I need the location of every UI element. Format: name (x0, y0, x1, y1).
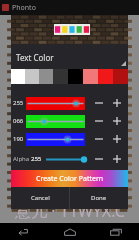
button[interactable]: Create Color Pattern (11, 170, 128, 187)
button[interactable]: Increase (108, 112, 126, 130)
staticText: Create Color Pattern (36, 174, 104, 184)
button[interactable] (46, 153, 88, 166)
button[interactable] (26, 115, 85, 128)
staticText: 190 (13, 135, 24, 143)
staticText: Phonto (12, 3, 36, 13)
button[interactable]: Increase (108, 150, 126, 168)
button[interactable]: Decrease (90, 112, 108, 130)
staticText: Cancel (31, 194, 50, 202)
staticText: Text Color (16, 52, 54, 63)
button[interactable]: Home (47, 223, 93, 240)
button[interactable]: Back (0, 223, 47, 240)
staticText: 意儿 · 11WYX.C (15, 200, 125, 222)
staticText: Done (91, 194, 107, 202)
staticText: 066 (13, 117, 24, 125)
staticText: 255 (13, 99, 24, 107)
button[interactable]: Increase (108, 130, 126, 148)
button[interactable]: Decrease (90, 130, 108, 148)
staticText: Alpha (13, 155, 31, 163)
button[interactable] (26, 133, 85, 146)
button[interactable] (26, 97, 85, 110)
button[interactable]: Phonto (0, 0, 139, 15)
button[interactable]: Decrease (90, 94, 108, 112)
button[interactable]: Done (70, 187, 128, 209)
staticText: 255 (31, 155, 42, 163)
button[interactable]: Increase (108, 94, 126, 112)
button[interactable]: Recent apps (93, 223, 139, 240)
button[interactable]: Decrease (90, 150, 108, 168)
button[interactable]: Cancel (11, 187, 69, 209)
